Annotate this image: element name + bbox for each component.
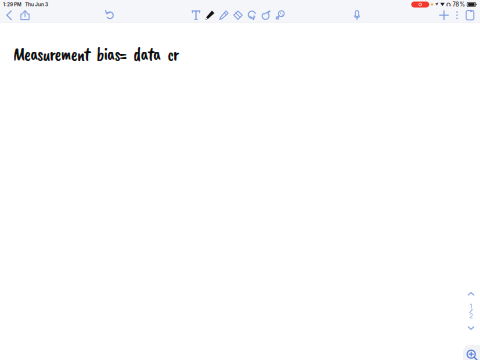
staticText: 2 bbox=[469, 312, 473, 320]
staticText: Measurement bbox=[13, 43, 90, 65]
button[interactable]: Back bbox=[2, 8, 16, 22]
button[interactable]: More options bbox=[451, 8, 463, 22]
button[interactable]: Undo bbox=[102, 8, 118, 22]
staticText: cr bbox=[168, 43, 179, 65]
button[interactable]: Add page bbox=[437, 8, 451, 22]
button[interactable]: Zoom bbox=[463, 345, 480, 360]
button[interactable]: Next page bbox=[464, 324, 478, 332]
button[interactable]: Page thumbnails bbox=[463, 8, 477, 22]
button[interactable]: Eraser bbox=[231, 8, 245, 22]
button[interactable]: Lasso bbox=[245, 8, 259, 22]
button[interactable]: Pen bbox=[203, 8, 217, 22]
button[interactable]: Previous page bbox=[464, 290, 478, 298]
button[interactable]: Highlighter bbox=[217, 8, 231, 22]
staticText: 1:29 PM bbox=[3, 2, 21, 7]
staticText: Thu Jun 3 bbox=[25, 2, 48, 7]
button[interactable]: Record audio bbox=[350, 8, 364, 22]
button[interactable]: Share bbox=[17, 8, 33, 22]
button[interactable]: Media bbox=[273, 8, 287, 22]
staticText: bias= bbox=[96, 43, 127, 65]
staticText: data bbox=[133, 43, 161, 65]
staticText: 78% bbox=[452, 1, 465, 8]
button[interactable]: Shapes bbox=[259, 8, 273, 22]
staticText: 1 bbox=[469, 302, 472, 310]
button[interactable]: Text tool bbox=[189, 8, 203, 22]
